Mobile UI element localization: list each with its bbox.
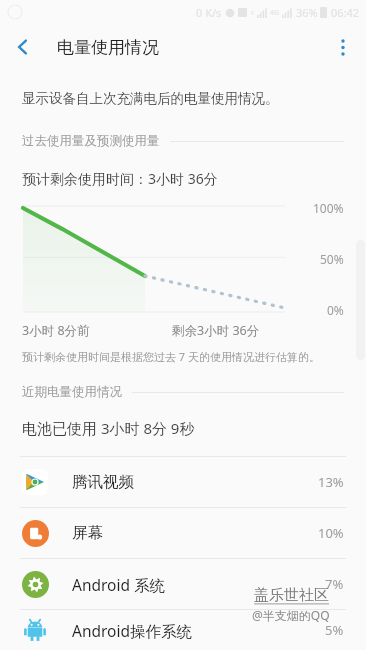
staticText: 屏幕 bbox=[72, 523, 103, 543]
button[interactable]: Android 系统 bbox=[0, 559, 366, 609]
staticText: 7% bbox=[325, 575, 344, 593]
staticText: E bbox=[251, 9, 255, 17]
staticText: 5% bbox=[325, 621, 344, 639]
staticText: 10% bbox=[318, 524, 344, 542]
staticText: 电池已使用 3小时 8分 9秒 bbox=[22, 418, 195, 438]
staticText: 06:42 bbox=[331, 5, 360, 20]
staticText: 预计剩余使用时间：3小时 36分 bbox=[22, 169, 218, 188]
staticText: 电量使用情况 bbox=[57, 37, 159, 58]
staticText: 预计剩余使用时间是根据您过去 7 天的使用情况进行估算的。 bbox=[22, 349, 321, 364]
staticText: Android 系统 bbox=[72, 574, 166, 595]
button[interactable]: More options bbox=[320, 24, 366, 70]
staticText: 盖乐世社区 bbox=[254, 586, 329, 605]
staticText: 近期电量使用情况 bbox=[22, 384, 122, 400]
button[interactable]: 屏幕 bbox=[0, 508, 366, 558]
staticText: Android操作系统 bbox=[72, 620, 193, 641]
button[interactable]: 腾讯视频 bbox=[0, 457, 366, 507]
staticText: 剩余3小时 36分 bbox=[172, 322, 260, 339]
staticText: 3小时 8分前 bbox=[22, 322, 90, 339]
staticText: 50% bbox=[320, 251, 344, 267]
staticText: 100% bbox=[313, 200, 344, 216]
staticText: 0 K/s bbox=[196, 5, 222, 20]
staticText: 过去使用量及预测使用量 bbox=[22, 133, 160, 149]
staticText: 13% bbox=[318, 473, 344, 491]
staticText: 0% bbox=[327, 302, 344, 318]
staticText: 显示设备自上次充满电后的电量使用情况。 bbox=[22, 90, 279, 107]
staticText: 腾讯视频 bbox=[72, 472, 134, 492]
staticText: 36% bbox=[296, 5, 318, 20]
button[interactable]: Android操作系统 bbox=[0, 610, 366, 650]
staticText: 4G bbox=[270, 8, 280, 18]
button[interactable]: Back bbox=[0, 24, 46, 70]
staticText: @半支烟的QQ bbox=[252, 607, 330, 623]
